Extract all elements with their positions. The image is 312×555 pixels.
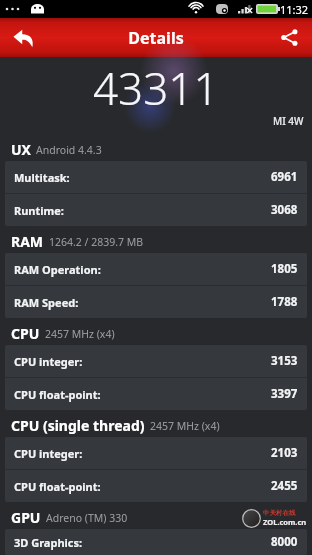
staticText: Details <box>128 27 184 49</box>
staticText: RAM Speed: <box>14 295 79 310</box>
button[interactable]: CPU integer: <box>5 437 307 469</box>
button[interactable]: CPU integer: <box>5 345 307 377</box>
staticText: 1264.2 / 2839.7 MB <box>49 235 144 249</box>
staticText: 11:32 <box>280 2 309 17</box>
staticText: CPU (single thread) <box>11 416 145 435</box>
button[interactable]: Share <box>266 18 312 57</box>
staticText: 2455 <box>271 478 298 494</box>
button[interactable]: CPU float-point: <box>5 470 307 502</box>
button[interactable]: Multitask: <box>5 161 307 193</box>
button[interactable]: RAM Speed: <box>5 286 307 318</box>
staticText: 1788 <box>271 294 298 310</box>
staticText: 1805 <box>271 261 298 277</box>
staticText: 2103 <box>271 445 298 461</box>
button[interactable]: RAM Operation: <box>5 253 307 285</box>
staticText: 中关村在线 <box>263 509 296 517</box>
staticText: MI 4W <box>273 114 304 128</box>
staticText: CPU integer: <box>14 354 83 369</box>
staticText: CPU float-point: <box>14 479 101 494</box>
staticText: CPU integer: <box>14 446 83 461</box>
staticText: CPU float-point: <box>14 387 101 402</box>
staticText: Adreno (TM) 330 <box>46 511 128 525</box>
staticText: 2457 MHz (x4) <box>45 327 115 341</box>
staticText: CPU <box>11 324 40 343</box>
button[interactable]: Runtime: <box>5 194 307 226</box>
staticText: 43311 <box>93 58 219 118</box>
staticText: ZOL.com.cn <box>263 517 307 527</box>
staticText: 2457 MHz (x4) <box>150 419 220 433</box>
button[interactable]: 3D Graphics: <box>5 529 307 555</box>
staticText: 3153 <box>271 353 298 369</box>
button[interactable]: CPU float-point: <box>5 378 307 410</box>
staticText: RAM <box>11 232 44 251</box>
staticText: 3397 <box>271 386 298 402</box>
staticText: Runtime: <box>14 203 64 218</box>
staticText: RAM Operation: <box>14 262 101 277</box>
staticText: 3068 <box>271 202 298 218</box>
staticText: 3D Graphics: <box>14 535 83 550</box>
staticText: Android 4.4.3 <box>36 143 102 157</box>
staticText: 6961 <box>271 169 298 185</box>
button[interactable]: Back <box>0 18 48 57</box>
staticText: UX <box>11 140 31 159</box>
staticText: Multitask: <box>14 170 70 185</box>
staticText: GPU <box>11 508 41 527</box>
staticText: 8000 <box>271 534 298 550</box>
